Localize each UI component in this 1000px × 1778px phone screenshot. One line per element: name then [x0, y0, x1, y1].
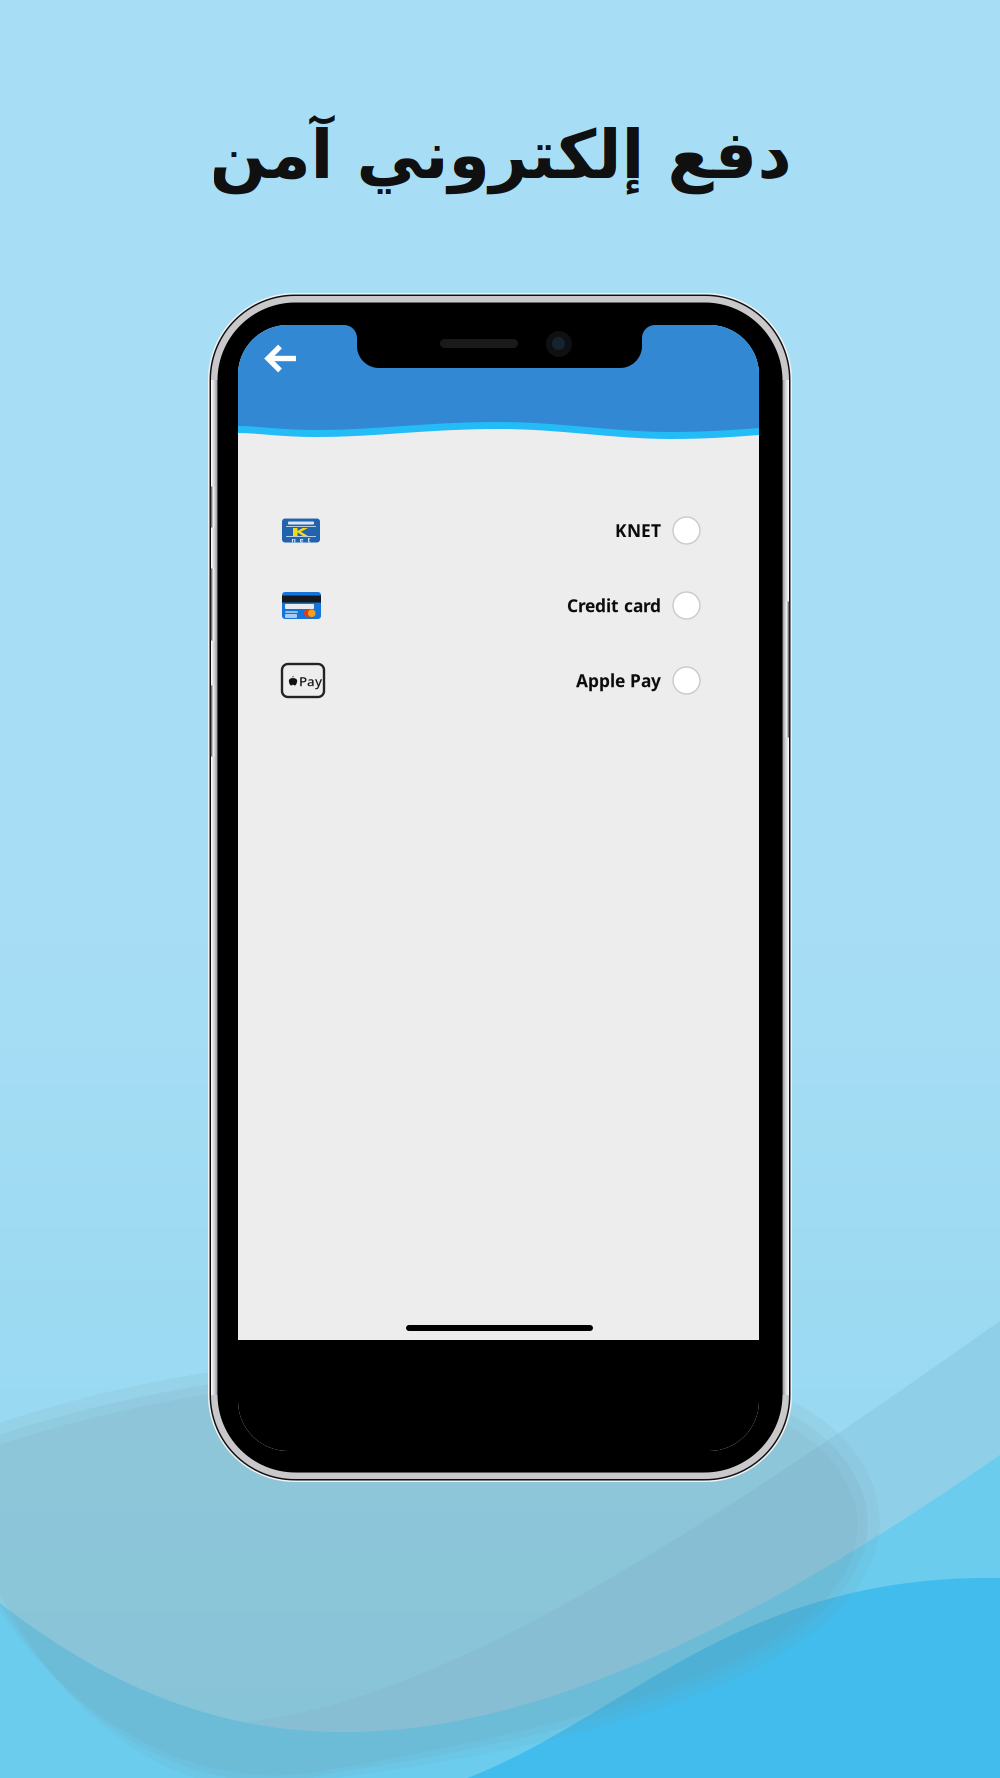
staticText: t [307, 536, 310, 544]
staticText: Apple Pay [576, 669, 661, 692]
staticText: دفع إلكتروني آمن [209, 117, 791, 193]
button[interactable]: n [238, 493, 759, 568]
button[interactable]: Pay [238, 643, 759, 718]
staticText: KNET [615, 519, 661, 542]
staticText: Credit card [567, 594, 661, 617]
button[interactable]: Back [256, 336, 307, 382]
button[interactable]: Credit card [238, 568, 759, 643]
staticText: n [291, 536, 295, 544]
staticText: e [299, 536, 303, 544]
staticText: Pay [299, 672, 322, 690]
